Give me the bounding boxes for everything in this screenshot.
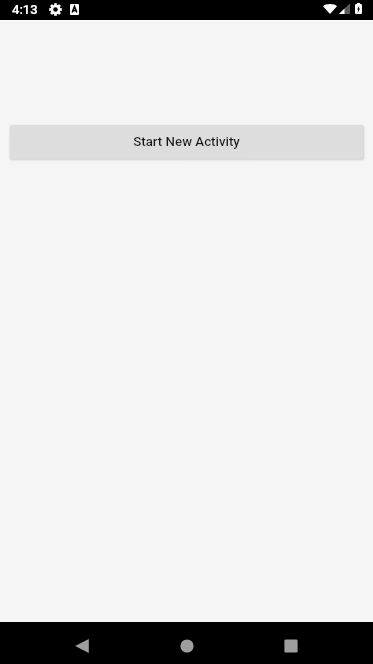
staticText: Start New Activity [133, 134, 240, 150]
button[interactable]: Recent apps [268, 622, 314, 664]
staticText: 4:13 [12, 2, 38, 17]
button[interactable]: Back [59, 622, 105, 664]
button[interactable]: Home [164, 622, 210, 664]
button[interactable]: Start New Activity [10, 125, 363, 159]
